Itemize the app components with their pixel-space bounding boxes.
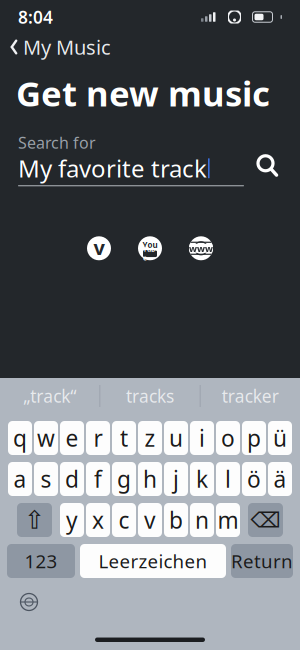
button[interactable]: Search: [244, 152, 282, 186]
staticText: q: [13, 423, 27, 453]
staticText: Leerzeichen: [98, 549, 207, 573]
button[interactable]: My Music: [0, 34, 300, 60]
staticText: ö: [247, 464, 261, 494]
staticText: b: [169, 505, 183, 535]
button[interactable]: s: [34, 462, 58, 496]
button[interactable]: a: [8, 462, 32, 496]
staticText: tracker: [222, 384, 279, 407]
button[interactable]: d: [60, 462, 84, 496]
button[interactable]: z: [138, 421, 162, 455]
button[interactable]: e: [60, 421, 84, 455]
staticText: tracks: [126, 384, 174, 407]
staticText: v: [93, 234, 104, 261]
button[interactable]: k: [190, 462, 214, 496]
button[interactable]: Shift: [17, 503, 52, 537]
staticText: s: [40, 464, 51, 494]
staticText: Search for: [18, 132, 96, 153]
button[interactable]: j: [164, 462, 188, 496]
staticText: y: [66, 505, 78, 535]
staticText: t: [120, 423, 128, 453]
staticText: ⇧: [24, 506, 45, 534]
staticText: Return: [231, 549, 293, 573]
staticText: ä: [273, 464, 286, 494]
button[interactable]: Search YouTube: [138, 236, 162, 260]
staticText: www: [189, 242, 213, 254]
button[interactable]: b: [164, 503, 188, 537]
button[interactable]: x: [86, 503, 110, 537]
button[interactable]: w: [34, 421, 58, 455]
button[interactable]: c: [112, 503, 136, 537]
button[interactable]: o: [216, 421, 240, 455]
button[interactable]: Delete: [248, 503, 283, 537]
staticText: h: [143, 464, 157, 494]
staticText: a: [13, 464, 26, 494]
staticText: My favorite track: [18, 152, 207, 184]
staticText: You: [142, 239, 157, 250]
staticText: j: [173, 464, 179, 494]
staticText: r: [93, 423, 102, 453]
button[interactable]: ü: [268, 421, 292, 455]
button[interactable]: „track“: [0, 378, 99, 414]
button[interactable]: r: [86, 421, 110, 455]
button[interactable]: n: [190, 503, 214, 537]
staticText: i: [199, 423, 205, 453]
button[interactable]: ä: [268, 462, 292, 496]
staticText: Get new music: [16, 70, 270, 116]
staticText: ⌫: [250, 508, 280, 532]
button[interactable]: g: [112, 462, 136, 496]
button[interactable]: q: [8, 421, 32, 455]
staticText: c: [118, 505, 129, 535]
staticText: p: [247, 423, 261, 453]
button[interactable]: u: [164, 421, 188, 455]
staticText: n: [195, 505, 209, 535]
button[interactable]: tracks: [100, 378, 200, 414]
button[interactable]: l: [216, 462, 240, 496]
staticText: f: [94, 464, 102, 494]
button[interactable]: i: [190, 421, 214, 455]
button[interactable]: 123: [7, 544, 75, 578]
staticText: o: [221, 423, 235, 453]
staticText: v: [144, 505, 156, 535]
staticText: k: [196, 464, 208, 494]
staticText: e: [65, 423, 78, 453]
staticText: ü: [273, 423, 287, 453]
button[interactable]: Return: [231, 544, 293, 578]
staticText: l: [225, 464, 231, 494]
button[interactable]: t: [112, 421, 136, 455]
button[interactable]: Switch keyboard language: [12, 585, 46, 619]
button[interactable]: f: [86, 462, 110, 496]
button[interactable]: Search Vimeo: [87, 236, 111, 260]
staticText: w: [37, 423, 55, 453]
staticText: My Music: [23, 34, 111, 60]
button[interactable]: tracker: [201, 378, 300, 414]
staticText: 8:04: [18, 5, 53, 28]
staticText: g: [117, 464, 131, 494]
button[interactable]: p: [242, 421, 266, 455]
staticText: m: [217, 505, 238, 535]
button[interactable]: ö: [242, 462, 266, 496]
button[interactable]: v: [138, 503, 162, 537]
staticText: 123: [24, 549, 57, 573]
button[interactable]: Leerzeichen: [80, 544, 226, 578]
staticText: d: [65, 464, 79, 494]
button[interactable]: h: [138, 462, 162, 496]
staticText: Tube: [143, 245, 157, 262]
staticText: u: [169, 423, 183, 453]
button[interactable]: m: [216, 503, 240, 537]
button[interactable]: Search the web: [189, 236, 213, 260]
button[interactable]: y: [60, 503, 84, 537]
staticText: „track“: [23, 384, 76, 407]
staticText: z: [144, 423, 155, 453]
staticText: x: [92, 505, 104, 535]
